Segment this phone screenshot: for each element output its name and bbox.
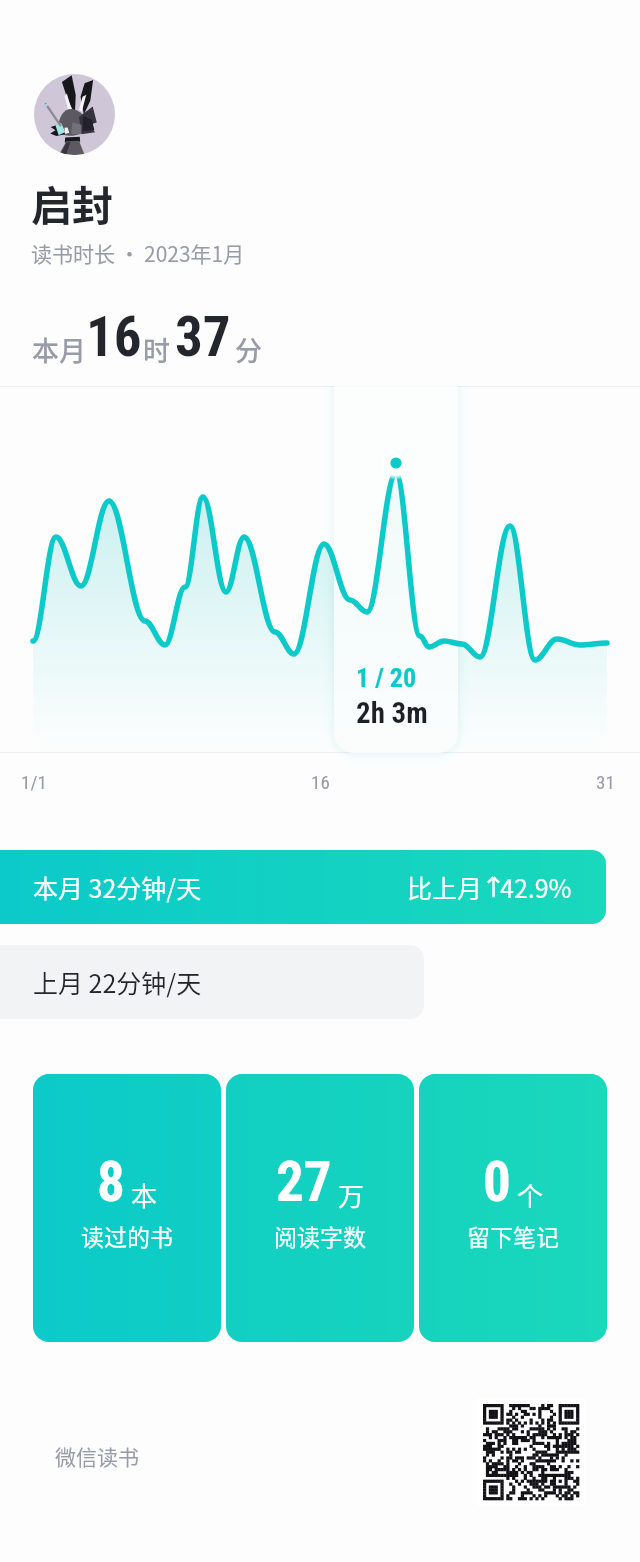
button[interactable]: 27 xyxy=(226,1074,414,1342)
staticText: 比上月 xyxy=(407,869,483,905)
button[interactable]: 上月 22分钟/天 xyxy=(0,945,424,1019)
button[interactable]: 0 xyxy=(419,1074,607,1342)
staticText: 阅读字数 xyxy=(274,1219,366,1252)
staticText: 37 xyxy=(175,305,231,369)
other: QR code xyxy=(477,1398,585,1506)
staticText: 个 xyxy=(517,1176,544,1214)
staticText: 31 xyxy=(596,771,615,793)
staticText: 时 xyxy=(143,330,170,369)
staticText: 27 xyxy=(276,1150,332,1214)
staticText: 8 xyxy=(97,1150,125,1214)
staticText: 启封 xyxy=(31,173,113,232)
staticText: 0 xyxy=(483,1150,511,1214)
staticText: · xyxy=(119,238,140,268)
staticText: 1/1 xyxy=(21,771,47,793)
staticText: 本月 xyxy=(32,330,86,369)
button[interactable]: 本月 32分钟/天 xyxy=(0,850,606,924)
staticText: 留下笔记 xyxy=(467,1219,559,1252)
button[interactable]: Profile avatar xyxy=(34,74,115,155)
staticText: 本 xyxy=(131,1176,158,1214)
staticText: 微信读书 xyxy=(55,1441,139,1471)
staticText: 读书时长 xyxy=(31,238,115,268)
staticText: 42.9% xyxy=(500,869,572,905)
staticText: 2023年1月 xyxy=(144,238,245,268)
staticText: 本月 32分钟/天 xyxy=(33,869,202,905)
staticText: 16 xyxy=(86,305,142,369)
staticText: 2h 3m xyxy=(356,696,428,730)
staticText: 1 / 20 xyxy=(356,663,417,693)
button[interactable]: 8 xyxy=(33,1074,221,1342)
staticText: 读过的书 xyxy=(81,1219,173,1252)
staticText: 上月 22分钟/天 xyxy=(33,964,202,1000)
staticText: 分 xyxy=(235,330,262,369)
staticText: 16 xyxy=(311,771,330,793)
staticText: 万 xyxy=(338,1176,365,1214)
